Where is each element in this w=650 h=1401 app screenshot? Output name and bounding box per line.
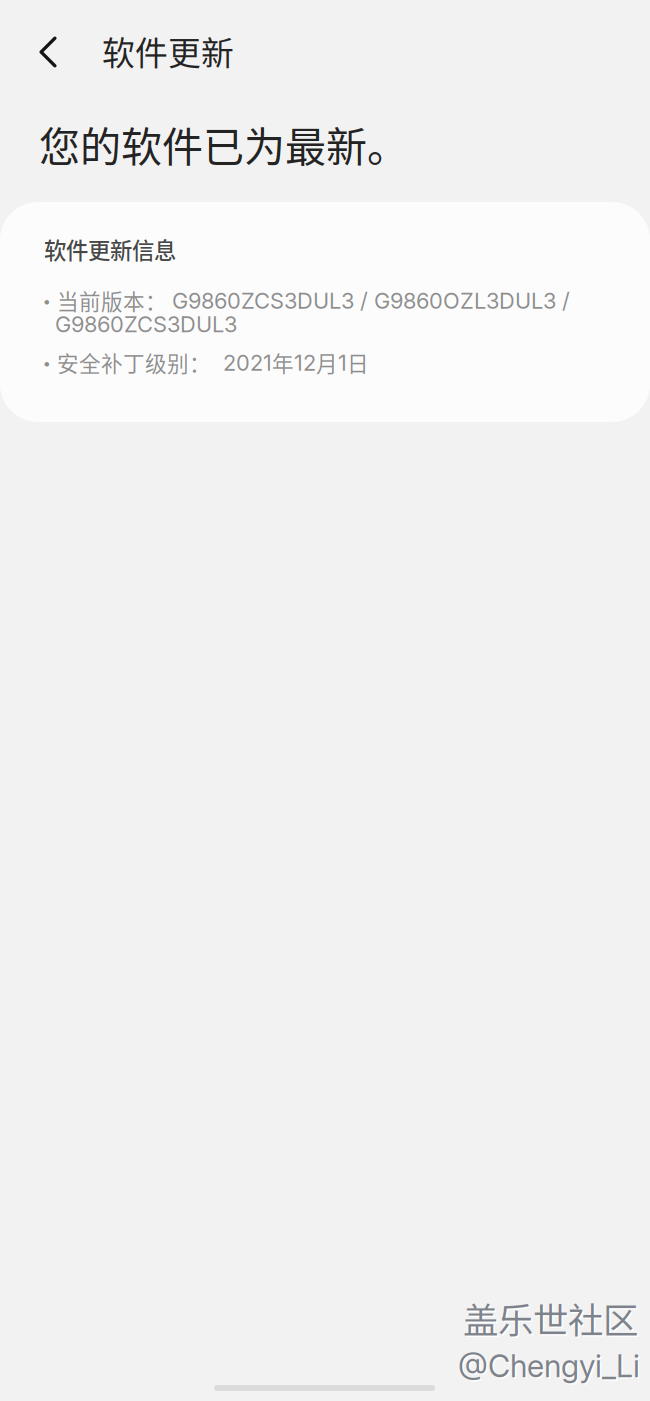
staticText: 软件更新信息 — [44, 233, 176, 265]
staticText: · — [36, 347, 58, 378]
staticText: 您的软件已为最新。 — [39, 114, 408, 174]
staticText: 盖乐世社区 — [464, 1294, 639, 1345]
staticText: 安全补丁级别： 2021年12月1日 — [57, 347, 369, 377]
staticText: 盖乐世社区 — [463, 1292, 638, 1344]
staticText: @Chengyi_Li — [458, 1347, 640, 1384]
staticText: · — [36, 285, 58, 316]
staticText: 当前版本： G9860ZCS3DUL3 / G9860OZL3DUL3 / — [57, 285, 570, 315]
staticText: 软件更新 — [102, 27, 234, 75]
button[interactable]: 返回 — [18, 23, 78, 81]
staticText: @Chengyi_Li — [459, 1349, 641, 1386]
staticText: G9860ZCS3DUL3 — [55, 311, 237, 337]
